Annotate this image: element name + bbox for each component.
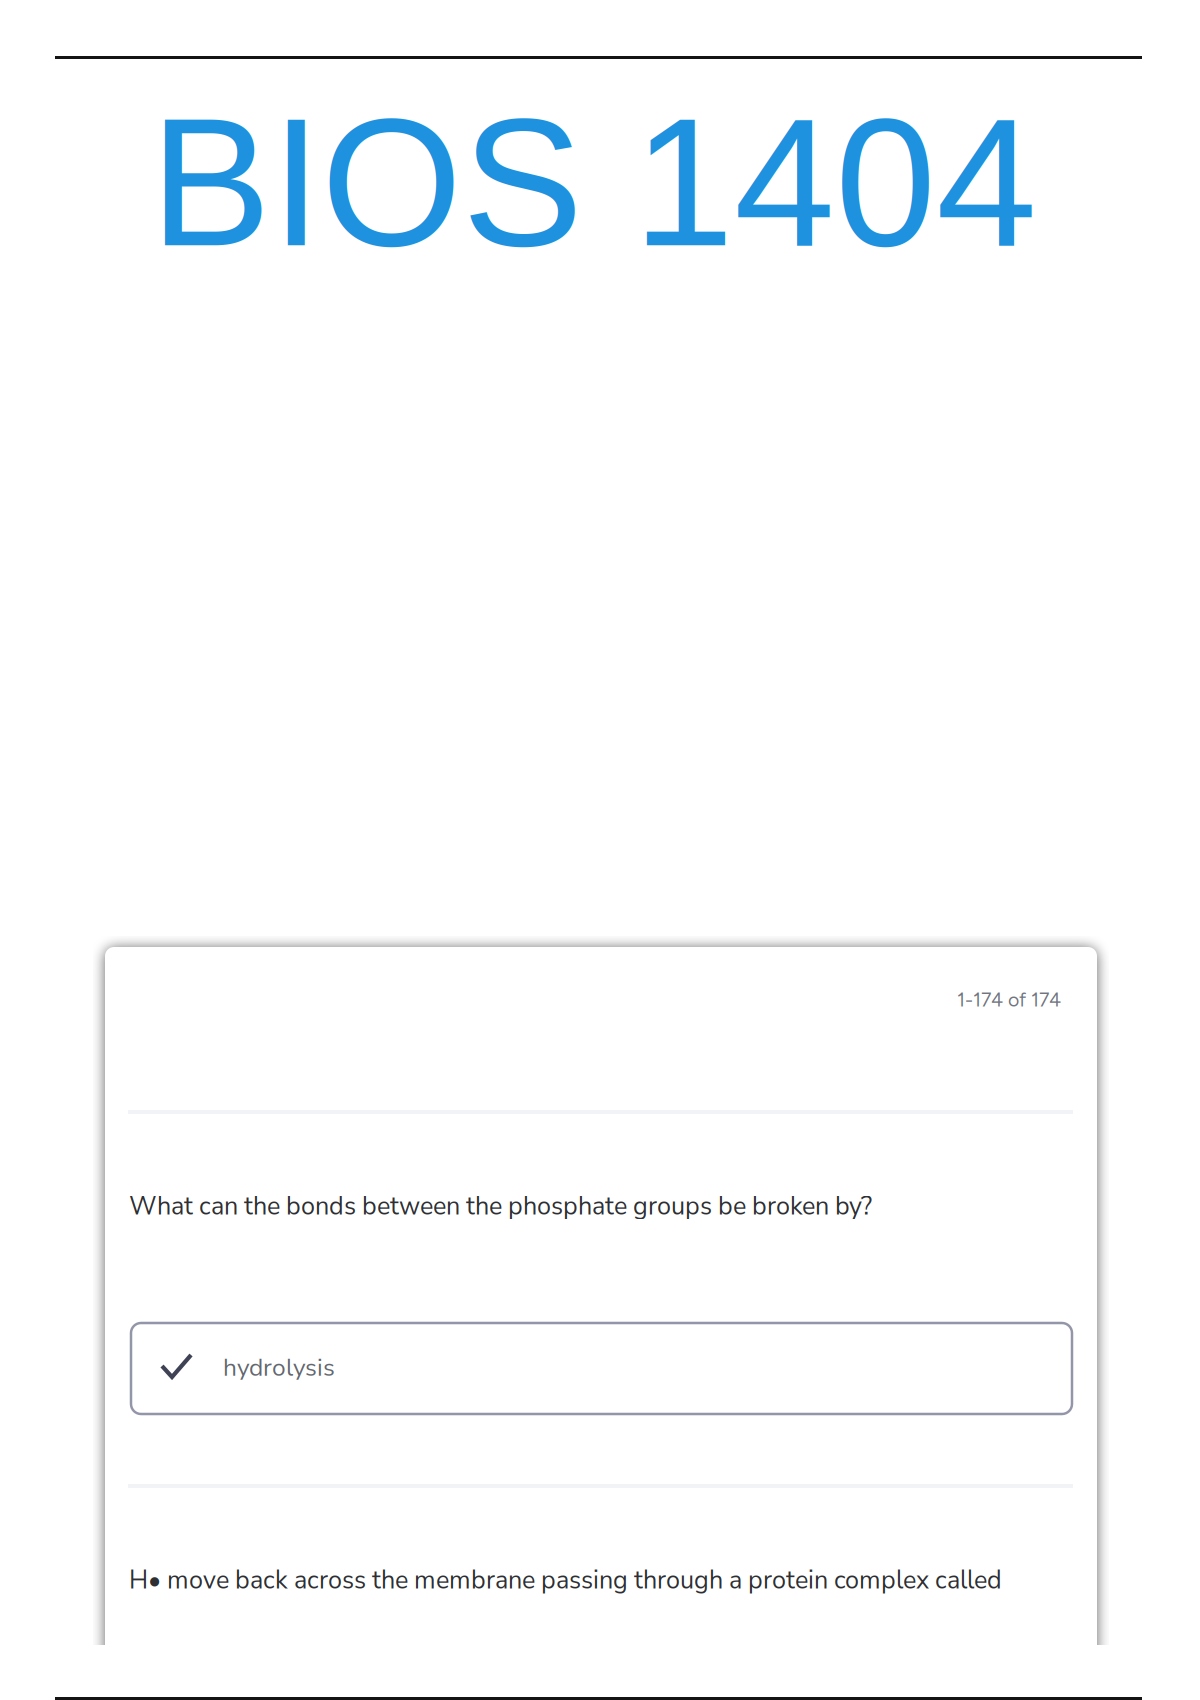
- staticText: What can the bonds between the phosphate…: [129, 1189, 872, 1223]
- staticText: hydrolysis: [223, 1351, 335, 1384]
- staticText: BIOS 1404: [150, 81, 1037, 284]
- staticText: 1-174 of 174: [957, 988, 1061, 1011]
- staticText: H• move back across the membrane passing…: [129, 1563, 1002, 1597]
- button[interactable]: hydrolysis: [131, 1323, 1072, 1414]
